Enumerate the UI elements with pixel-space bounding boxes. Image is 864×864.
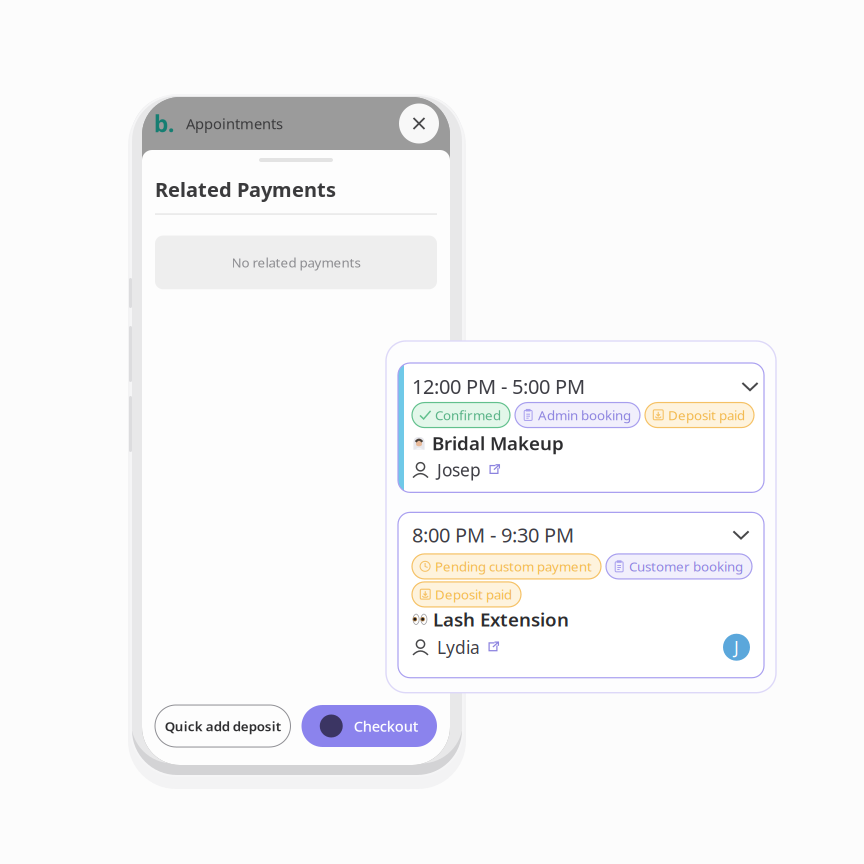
- staticText: Confirmed: [435, 406, 501, 424]
- staticText: Lydia: [437, 636, 480, 659]
- staticText: Josep: [437, 458, 481, 481]
- staticText: No related payments: [231, 254, 360, 271]
- staticText: Deposit paid: [668, 406, 745, 424]
- staticText: Checkout: [354, 716, 419, 736]
- button[interactable]: Checkout: [301, 705, 437, 747]
- staticText: 8:00 PM - 9:30 PM: [412, 521, 574, 548]
- staticText: b.: [154, 108, 174, 138]
- staticText: Quick add deposit: [165, 717, 281, 735]
- button[interactable]: 12:00 PM - 5:00 PM: [398, 363, 764, 492]
- button[interactable]: Quick add deposit: [155, 705, 290, 747]
- staticText: Related Payments: [155, 176, 336, 203]
- button[interactable]: 8:00 PM - 9:30 PM: [398, 512, 764, 678]
- staticText: Pending custom payment: [435, 558, 592, 575]
- staticText: Bridal Makeup: [432, 431, 564, 455]
- staticText: Admin booking: [538, 406, 631, 424]
- staticText: Customer booking: [629, 558, 743, 575]
- staticText: Lash Extension: [433, 607, 569, 632]
- staticText: Appointments: [186, 114, 283, 133]
- staticText: Deposit paid: [435, 586, 512, 603]
- staticText: 12:00 PM - 5:00 PM: [412, 373, 585, 400]
- staticText: J: [734, 636, 739, 659]
- button[interactable]: Close: [399, 103, 439, 143]
